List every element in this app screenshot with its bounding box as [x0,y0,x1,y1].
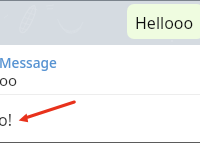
button[interactable]: o! [0,95,200,142]
staticText: o! [0,109,12,131]
button[interactable]: Message [0,45,200,94]
staticText: Message [0,53,57,72]
other: Annotation arrow [0,0,200,145]
staticText: Hellooo [135,12,194,34]
staticText: oo [0,70,18,90]
button[interactable]: Hellooo [127,4,200,39]
